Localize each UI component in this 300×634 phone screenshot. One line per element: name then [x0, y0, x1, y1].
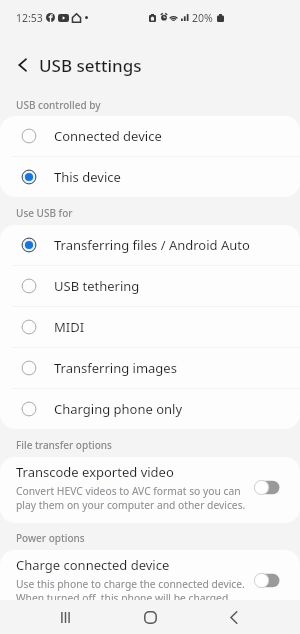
button[interactable]: Back: [10, 53, 34, 77]
button[interactable]: Back: [214, 600, 254, 634]
staticText: USB settings: [39, 54, 142, 77]
button[interactable]: USB tethering: [0, 266, 300, 306]
staticText: Charge connected device: [16, 556, 170, 574]
staticText: File transfer options: [16, 438, 112, 452]
button[interactable]: Recent apps: [45, 600, 85, 634]
staticText: Use USB for: [16, 206, 73, 220]
staticText: Transcode exported video: [16, 463, 174, 481]
button[interactable]: Transcode exported video: [0, 457, 300, 523]
button[interactable]: Charge connected device: [0, 550, 300, 616]
button[interactable]: This device: [0, 157, 300, 197]
staticText: USB controlled by: [16, 98, 101, 112]
staticText: 20%: [192, 11, 213, 25]
button[interactable]: Transferring images: [0, 348, 300, 388]
staticText: Connected device: [54, 127, 162, 145]
button[interactable]: Connected device: [0, 116, 300, 156]
staticText: Charging phone only: [54, 400, 183, 418]
staticText: Power options: [16, 531, 85, 545]
staticText: Transferring images: [54, 359, 177, 377]
staticText: Transferring files / Android Auto: [54, 236, 250, 254]
button[interactable]: MIDI: [0, 307, 300, 347]
button[interactable]: Home: [130, 600, 170, 634]
staticText: This device: [54, 168, 121, 186]
staticText: USB tethering: [54, 277, 140, 295]
staticText: MIDI: [54, 318, 85, 336]
button[interactable]: Charging phone only: [0, 389, 300, 429]
staticText: 12:53: [16, 11, 43, 25]
staticText: Convert HEVC videos to AVC format so you…: [16, 484, 246, 512]
button[interactable]: Transferring files / Android Auto: [0, 225, 300, 265]
staticText: Use this phone to charge the connected d…: [16, 577, 245, 605]
